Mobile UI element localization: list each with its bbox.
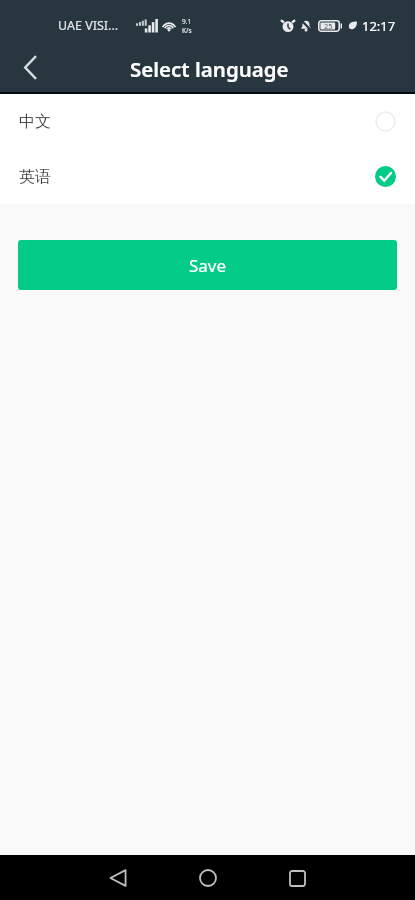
button[interactable]: Back xyxy=(96,856,140,900)
staticText: 25 xyxy=(324,21,333,31)
button[interactable]: Home xyxy=(186,856,230,900)
staticText: UAE VISI... xyxy=(58,17,119,34)
button[interactable]: Back xyxy=(6,47,53,88)
staticText: 中文 xyxy=(19,112,51,132)
button[interactable]: Recents xyxy=(275,856,319,900)
staticText: Save xyxy=(189,254,227,277)
staticText: 英语 xyxy=(19,167,51,187)
button[interactable]: 英语 xyxy=(0,149,415,204)
button[interactable]: 中文 xyxy=(0,94,415,149)
button[interactable]: Save xyxy=(18,240,397,290)
staticText: 12:17 xyxy=(362,17,396,35)
staticText: Select language xyxy=(130,55,289,83)
staticText: K/s xyxy=(182,26,192,35)
staticText: 9.1 xyxy=(182,17,192,26)
